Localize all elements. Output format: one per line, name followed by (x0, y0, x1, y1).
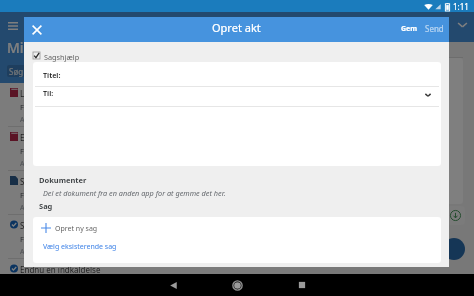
button[interactable]: Sagshjælp (33, 49, 80, 62)
button[interactable]: Download (446, 206, 465, 225)
staticText: Dokumenter (39, 175, 87, 185)
button[interactable]: Home (232, 280, 243, 291)
staticText: Arkiveret 12-03-2021 kl 09.12 (20, 203, 116, 213)
button[interactable]: Til: (33, 87, 441, 106)
staticText: Sagsdokument nummer fire (20, 176, 126, 187)
staticText: Til: (43, 89, 54, 99)
button[interactable]: Back (169, 281, 178, 290)
staticText: Sag (39, 201, 53, 211)
button[interactable]: Vælg eksisterende sag (33, 242, 441, 263)
staticText: Arkiveret 12-03-2021 kl 09.12 (20, 159, 116, 169)
staticText: Brev om din sag er modtaget og behandles… (310, 66, 458, 88)
button[interactable]: Eksempel paa sagsakt her (0, 127, 300, 171)
staticText: Søg i sagsmappen (9, 66, 78, 77)
staticText: Gem (401, 24, 418, 34)
staticText: Status er nu opdateret (20, 220, 105, 231)
button[interactable]: Status er nu opdateret (0, 215, 300, 259)
staticText: 1:11 (453, 1, 469, 12)
staticText: Vælg eksisterende sag (43, 242, 117, 252)
staticText: Sagshjælp (44, 52, 80, 62)
staticText: Opret ny sag (55, 224, 98, 234)
button[interactable]: Opret (443, 238, 465, 260)
button[interactable]: Luk (27, 20, 46, 39)
staticText: Fra: Myndighed, kontor 3 (20, 102, 109, 112)
staticText: Del et dokument fra en anden app for at … (43, 188, 226, 198)
button[interactable]: Titel: (33, 62, 441, 86)
staticText: Send (425, 23, 444, 34)
staticText: Opdateret 12-03-2021 (310, 102, 383, 112)
staticText: Titel: (43, 71, 61, 81)
staticText: Fra: Myndighed, kontor 3 (20, 234, 109, 244)
button[interactable]: Mere (457, 19, 468, 30)
staticText: Endnu en indkaldelse (20, 264, 101, 275)
staticText: Arkiveret 12-03-2021 kl 09.12 (20, 247, 116, 257)
button[interactable]: Lorem ipsum dolor sit amet (0, 83, 300, 127)
staticText: Opret akt (212, 20, 261, 35)
staticText: Fra: Myndighed, kontor 3 (20, 146, 109, 156)
staticText: Eksempel paa sagsakt her (20, 132, 118, 143)
staticText: Lorem ipsum dolor sit amet (20, 88, 124, 99)
staticText: Fra: Myndighed, kontor 3 (20, 190, 109, 200)
button[interactable]: Søg i sagsmappen (7, 65, 292, 77)
staticText: Min sagsmappe (7, 38, 114, 57)
staticText: Arkiveret 12-03-2021 kl 09.12 (20, 115, 116, 125)
button[interactable]: Gem (397, 18, 422, 39)
button[interactable]: Endnu en indkaldelse (0, 259, 300, 296)
button[interactable]: Send (421, 18, 448, 39)
button[interactable]: Sagsdokument nummer fire (0, 171, 300, 215)
button[interactable]: Menu (4, 17, 21, 34)
button[interactable]: Opret ny sag (33, 217, 441, 242)
button[interactable]: Recents (298, 281, 306, 289)
